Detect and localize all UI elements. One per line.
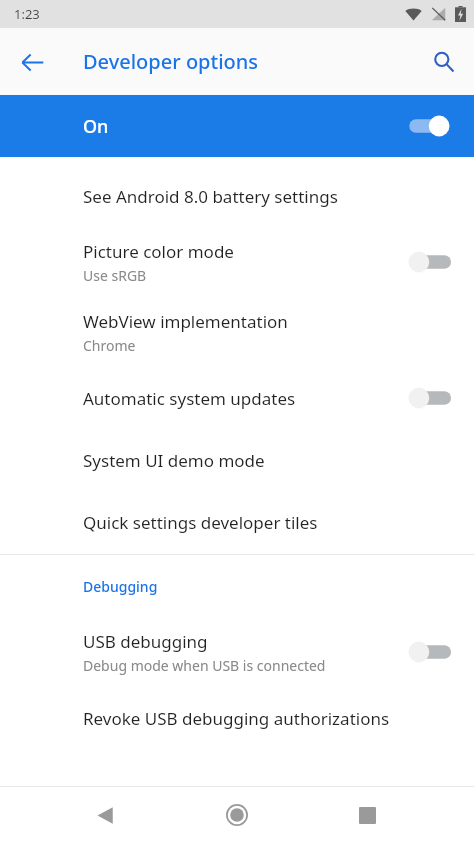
button[interactable]: Toggle off [406,639,452,665]
staticText: Revoke USB debugging authorizations [83,707,390,730]
button[interactable]: See Android 8.0 battery settings [0,165,474,227]
button[interactable]: Quick settings developer tiles [0,491,474,553]
staticText: Picture color mode [83,240,234,263]
staticText: 1:23 [14,5,40,23]
staticText: Use sRGB [83,266,147,285]
button[interactable]: System UI demo mode [0,429,474,491]
button[interactable]: Search [420,38,468,86]
staticText: Chrome [83,336,136,355]
button[interactable]: Home [213,791,261,839]
button[interactable]: Toggle on [406,113,452,139]
staticText: USB debugging [83,630,208,653]
button[interactable]: Back [8,38,56,86]
button[interactable]: Picture color mode [0,227,474,297]
staticText: Quick settings developer tiles [83,511,318,534]
button[interactable]: On [0,95,474,157]
staticText: WebView implementation [83,310,288,333]
staticText: See Android 8.0 battery settings [83,185,338,208]
staticText: Debug mode when USB is connected [83,656,326,675]
button[interactable]: WebView implementation [0,297,474,367]
button[interactable]: Automatic system updates [0,367,474,429]
button[interactable]: Toggle off [406,249,452,275]
button[interactable]: Revoke USB debugging authorizations [0,687,474,749]
button[interactable]: USB debugging [0,617,474,687]
staticText: Automatic system updates [83,387,296,410]
button[interactable]: Back [81,791,129,839]
staticText: On [83,114,109,139]
staticText: Developer options [83,48,259,75]
staticText: System UI demo mode [83,449,265,472]
staticText: Debugging [83,577,158,596]
button[interactable]: Toggle off [406,385,452,411]
button[interactable]: Recent apps [343,791,391,839]
